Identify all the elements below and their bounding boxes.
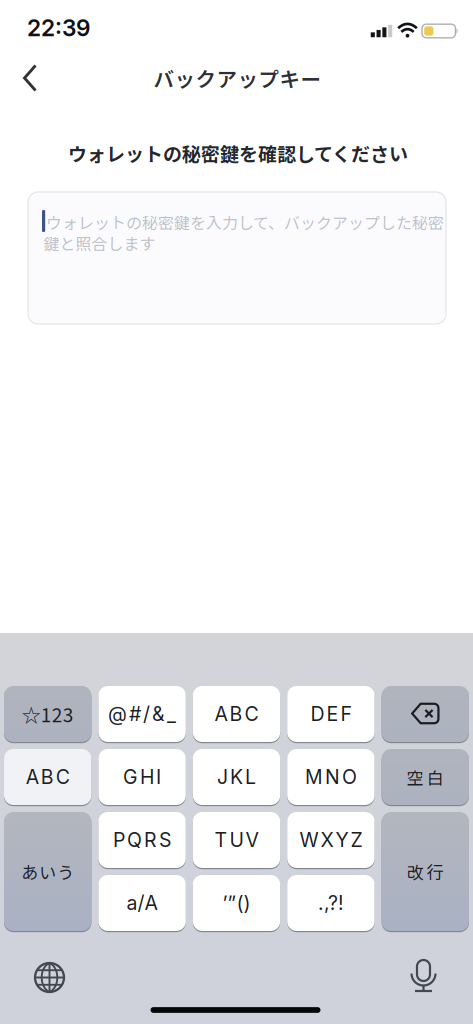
staticText: @ # / & _ <box>108 702 176 726</box>
staticText: M N O <box>305 765 357 789</box>
button[interactable]: Next keyboard <box>27 955 71 999</box>
button[interactable]: 改 行 <box>382 811 469 932</box>
staticText: ☆123 <box>22 700 74 728</box>
button[interactable]: 空 白 <box>382 748 469 806</box>
staticText: 空 白 <box>407 765 444 789</box>
button[interactable]: D E F <box>287 685 375 743</box>
staticText: ウォレットの秘密鍵を確認してください <box>68 139 408 167</box>
staticText: G H I <box>123 765 161 789</box>
button[interactable]: A B C <box>193 685 280 743</box>
button[interactable]: W X Y Z <box>287 811 375 869</box>
button[interactable]: J K L <box>193 748 280 806</box>
button[interactable]: あ い う <box>4 811 91 932</box>
staticText: T U V <box>214 828 258 852</box>
staticText: A B C <box>214 702 258 726</box>
staticText: D E F <box>310 702 351 726</box>
staticText: A B C <box>26 765 70 789</box>
button[interactable]: .,?! <box>287 874 375 932</box>
staticText: 鍵と照合します <box>43 231 155 254</box>
staticText: ’”() <box>222 891 250 915</box>
staticText: あ い う <box>21 859 74 884</box>
button[interactable]: @ # / & _ <box>98 685 186 743</box>
staticText: J K L <box>217 765 256 789</box>
button[interactable]: G H I <box>98 748 186 806</box>
button[interactable]: ’”() <box>193 874 280 932</box>
staticText: バックアップキー <box>153 63 321 93</box>
staticText: 22:39 <box>27 14 90 42</box>
button[interactable]: T U V <box>193 811 280 869</box>
button[interactable]: Back <box>8 56 52 100</box>
staticText: P Q R S <box>113 828 171 852</box>
button[interactable]: Delete <box>382 685 469 743</box>
button[interactable]: P Q R S <box>98 811 186 869</box>
button[interactable]: A B C <box>4 748 91 806</box>
button[interactable]: Dictation <box>401 954 445 998</box>
staticText: .,?! <box>318 891 344 915</box>
staticText: ウォレットの秘密鍵を入力して、バックアップした秘密 <box>46 210 444 233</box>
button[interactable]: ☆123 <box>4 685 91 743</box>
button[interactable]: M N O <box>287 748 375 806</box>
button[interactable]: a/A <box>98 874 186 932</box>
staticText: W X Y Z <box>299 828 362 852</box>
staticText: a/A <box>127 891 158 915</box>
staticText: 改 行 <box>407 859 444 884</box>
